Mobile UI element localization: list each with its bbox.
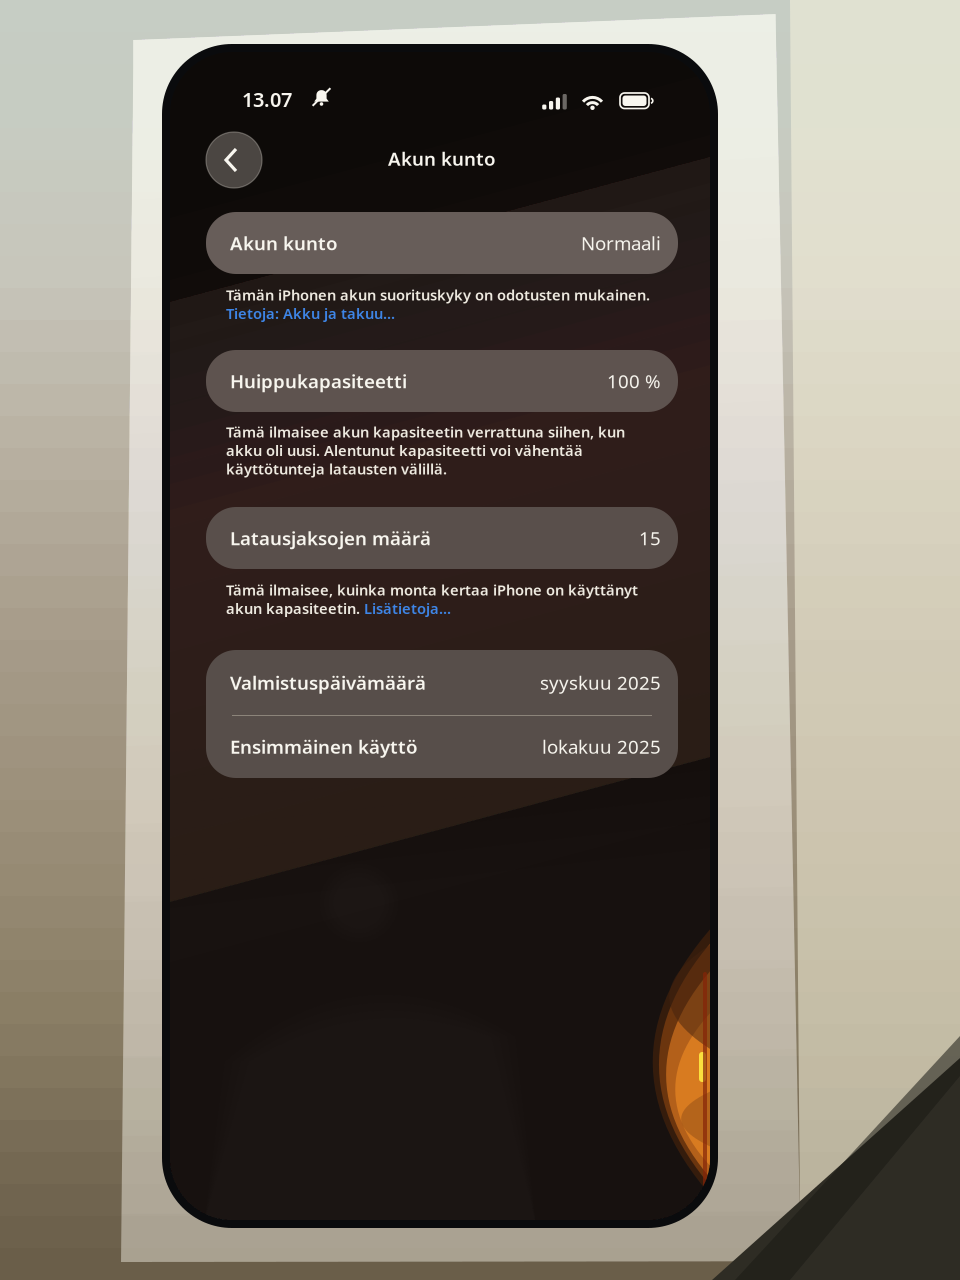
button[interactable]: Lisätietoja...	[364, 598, 451, 618]
button[interactable]: Akun kunto	[206, 212, 678, 274]
staticText: Tämä ilmaisee, kuinka monta kertaa iPhon…	[226, 580, 638, 599]
staticText: Valmistuspäivämäärä	[230, 670, 426, 695]
button[interactable]: Latausjaksojen määrä	[206, 507, 678, 569]
staticText: akku oli uusi. Alentunut kapasiteetti vo…	[226, 440, 583, 460]
staticText: käyttötunteja latausten välillä.	[226, 459, 447, 478]
staticText: Tämän iPhonen akun suorituskyky on odotu…	[226, 285, 650, 304]
staticText: akun kapasiteetin.	[226, 598, 360, 618]
staticText: Normaali	[581, 231, 661, 255]
staticText: Akun kunto	[230, 231, 338, 255]
button[interactable]: Tietoja: Akku ja takuu...	[226, 303, 395, 323]
staticText: 13.07	[242, 86, 292, 113]
staticText: 15	[639, 526, 661, 550]
staticText: Tietoja: Akku ja takuu...	[226, 303, 395, 323]
button[interactable]: Back	[206, 132, 262, 188]
button[interactable]: Valmistuspäivämäärä	[206, 650, 678, 715]
staticText: Huippukapasiteetti	[230, 369, 407, 393]
staticText: Lisätietoja...	[364, 598, 451, 618]
staticText: Ensimmäinen käyttö	[230, 734, 418, 759]
staticText: syyskuu 2025	[540, 670, 661, 695]
staticText: Latausjaksojen määrä	[230, 526, 431, 550]
button[interactable]: Ensimmäinen käyttö	[206, 715, 678, 778]
button[interactable]: Huippukapasiteetti	[206, 350, 678, 412]
staticText: Tämä ilmaisee akun kapasiteetin verrattu…	[226, 422, 625, 441]
staticText: Akun kunto	[388, 146, 496, 171]
staticText: 100 %	[607, 369, 661, 393]
staticText: lokakuu 2025	[542, 734, 661, 759]
